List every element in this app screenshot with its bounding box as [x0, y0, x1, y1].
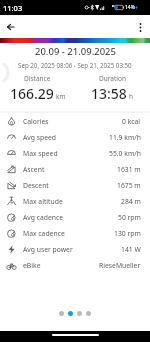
staticText: RieseMueller [99, 261, 141, 270]
staticText: Sep 20, 2025 08:06 - Sep 21, 2025 03:50 [18, 61, 132, 69]
button[interactable]: Avg user power [0, 241, 150, 257]
staticText: 11.9 km/h [109, 133, 141, 142]
button[interactable]: Page 4 [86, 311, 91, 316]
staticText: Avg cadence [23, 213, 64, 222]
staticText: Max cadence [23, 229, 65, 238]
staticText: 1675 m [117, 181, 141, 190]
button[interactable]: Avg cadence [0, 209, 150, 225]
button[interactable]: Ascent [0, 161, 150, 177]
staticText: 1631 m [117, 165, 141, 174]
staticText: 284 m [121, 197, 141, 206]
staticText: 20.09 - 21.09.2025 [35, 45, 116, 58]
staticText: Calories [23, 117, 49, 126]
staticText: 130 rpm [114, 229, 141, 238]
staticText: Avg speed [23, 133, 57, 142]
button[interactable]: eBike [0, 257, 150, 273]
staticText: Distance [24, 74, 51, 83]
staticText: km [56, 92, 66, 101]
staticText: 14% [125, 4, 135, 11]
staticText: 13:58 [91, 84, 127, 103]
staticText: 50 rpm [118, 213, 141, 222]
button[interactable]: Calories [0, 113, 150, 129]
staticText: Max speed [23, 149, 58, 158]
staticText: h [129, 92, 134, 101]
button[interactable]: Max speed [0, 145, 150, 161]
button[interactable]: Back [1, 18, 19, 36]
staticText: Avg user power [23, 245, 73, 254]
staticText: Duration [99, 74, 126, 83]
button[interactable]: Max cadence [0, 225, 150, 241]
staticText: 166.29 [10, 84, 54, 103]
staticText: eBike [23, 261, 41, 270]
staticText: Ascent [23, 165, 45, 174]
staticText: Descent [23, 181, 49, 190]
button[interactable]: Page 3 [77, 311, 82, 316]
staticText: 11:03 [3, 3, 23, 13]
button[interactable]: Page 1 [59, 311, 64, 316]
staticText: 0 kcal [122, 117, 141, 126]
button[interactable]: More options [131, 18, 149, 36]
staticText: Max altitude [23, 197, 63, 206]
button[interactable]: Max altitude [0, 193, 150, 209]
button[interactable]: Descent [0, 177, 150, 193]
button[interactable]: Page 2 [68, 311, 73, 316]
button[interactable]: Avg speed [0, 129, 150, 145]
staticText: 55.0 km/h [109, 149, 141, 158]
staticText: 141 W [121, 245, 141, 254]
